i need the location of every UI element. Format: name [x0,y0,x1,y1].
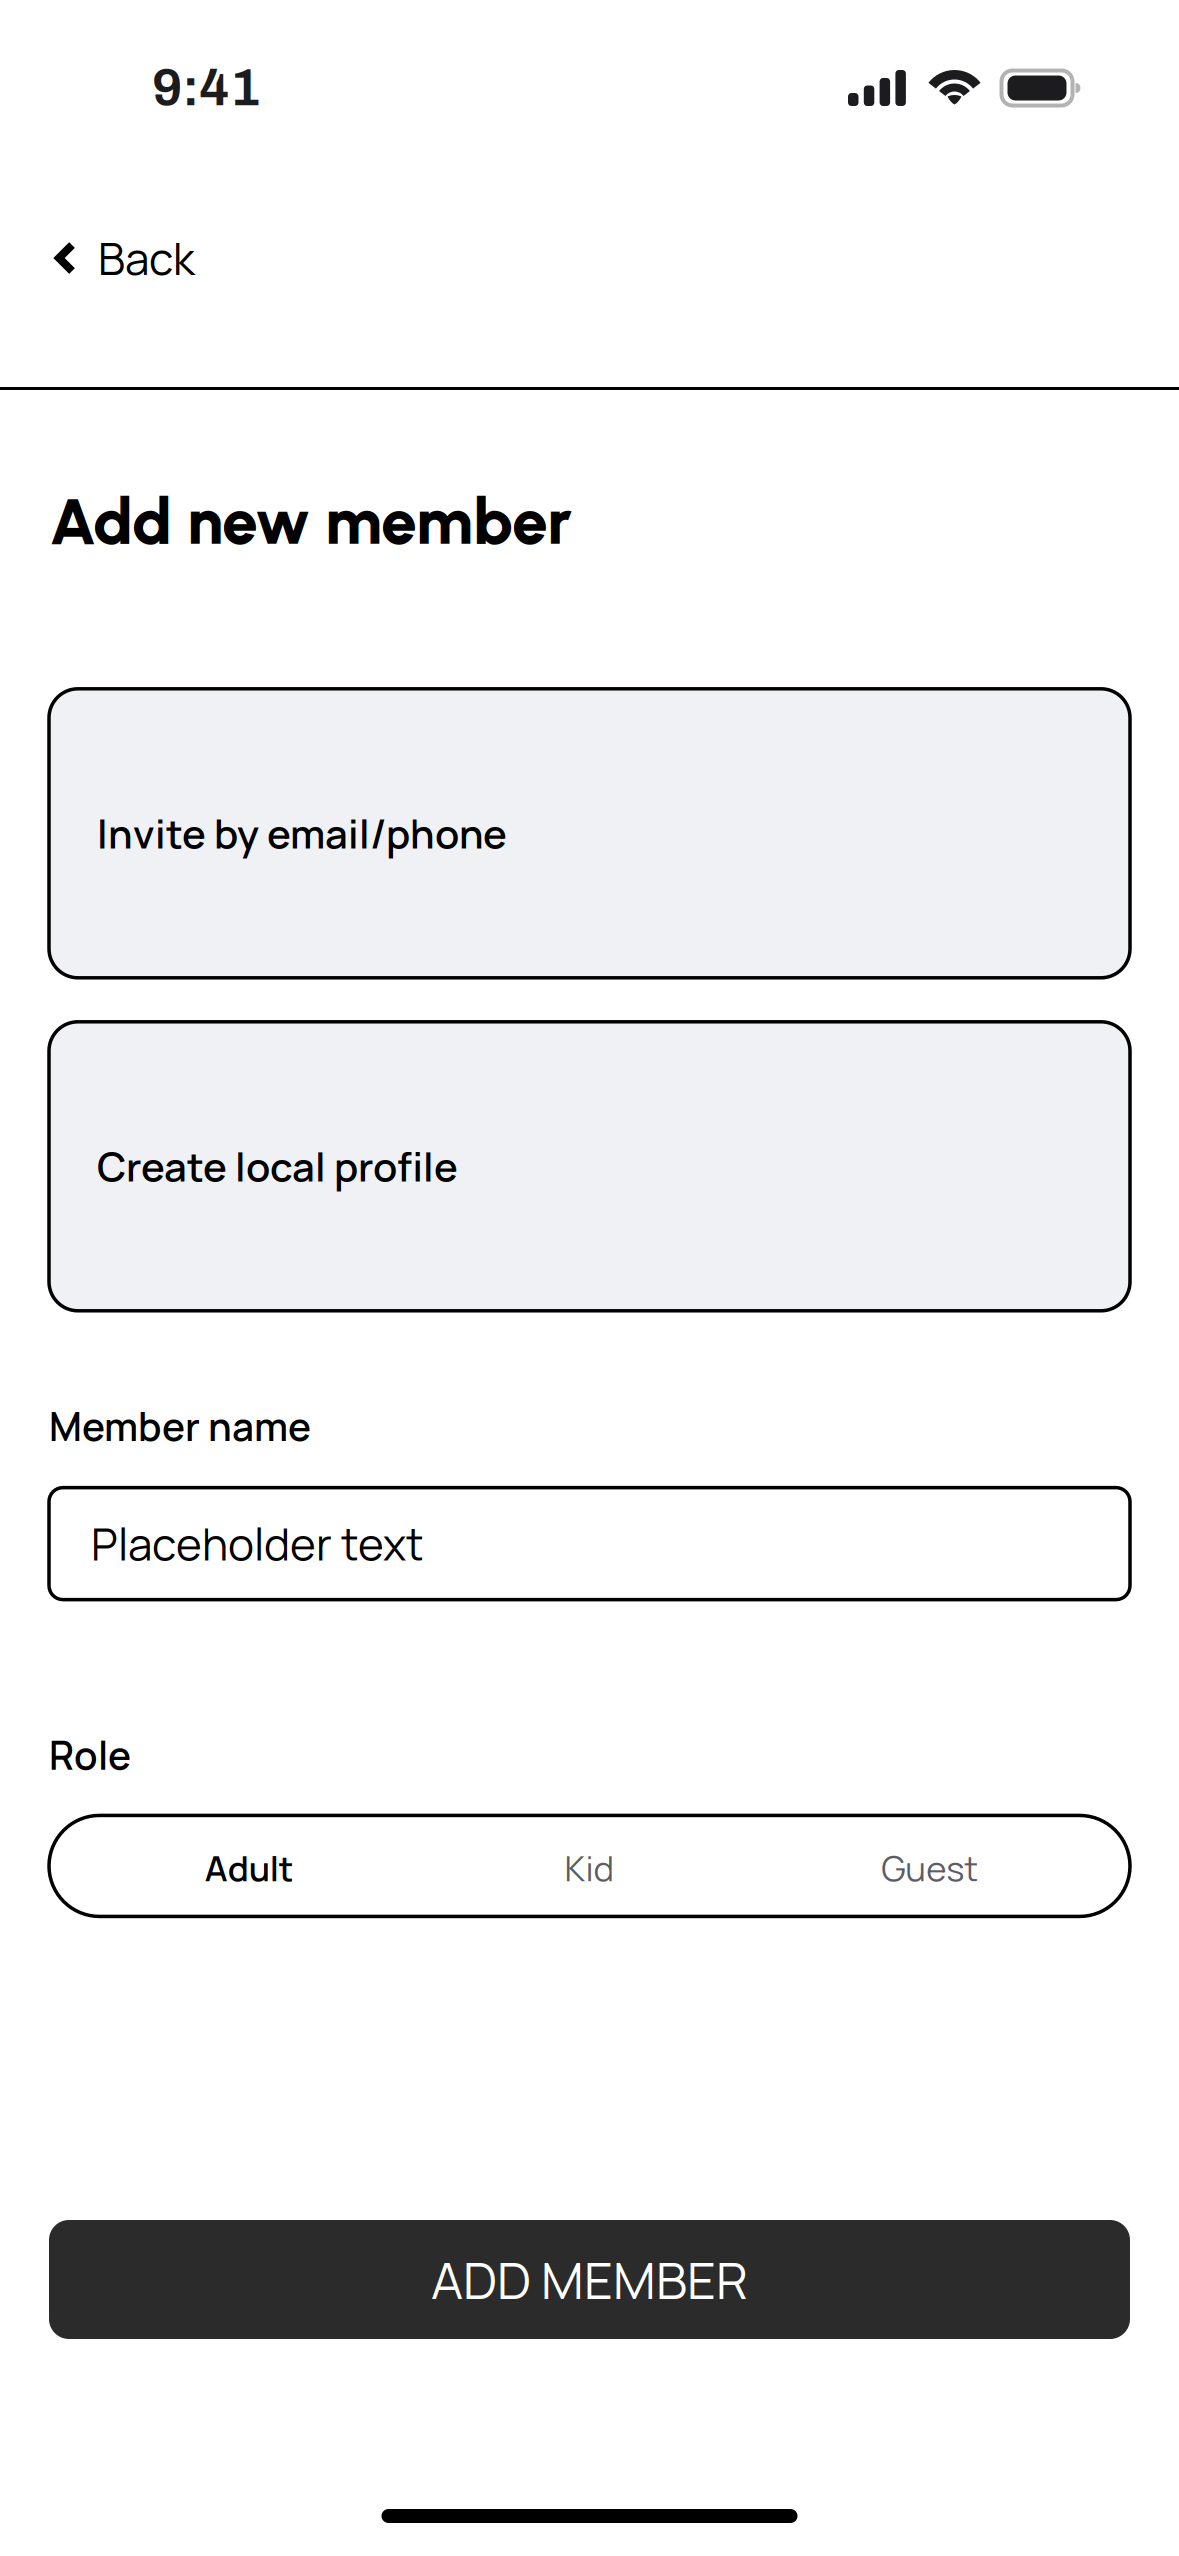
button[interactable]: Back [0,176,219,312]
staticText: Add new member [49,483,572,560]
button[interactable]: Guest [760,1814,1100,1918]
staticText: Kid [564,1844,614,1892]
button[interactable]: Kid [419,1814,760,1918]
staticText: Invite by email/phone [97,806,507,861]
button[interactable]: Invite by email/phone [49,689,1130,978]
staticText: Role [49,1729,131,1781]
button[interactable]: ADD MEMBER [49,2220,1130,2339]
staticText: 9:41 [152,60,260,116]
staticText: Placeholder text [91,1514,424,1574]
staticText: ADD MEMBER [431,2245,748,2314]
button[interactable]: Adult [79,1814,419,1918]
staticText: Member name [49,1400,311,1453]
staticText: Guest [881,1844,978,1892]
staticText: Back [98,228,195,288]
button[interactable]: Create local profile [49,1022,1130,1311]
staticText: Adult [205,1844,294,1892]
staticText: Create local profile [97,1139,458,1194]
